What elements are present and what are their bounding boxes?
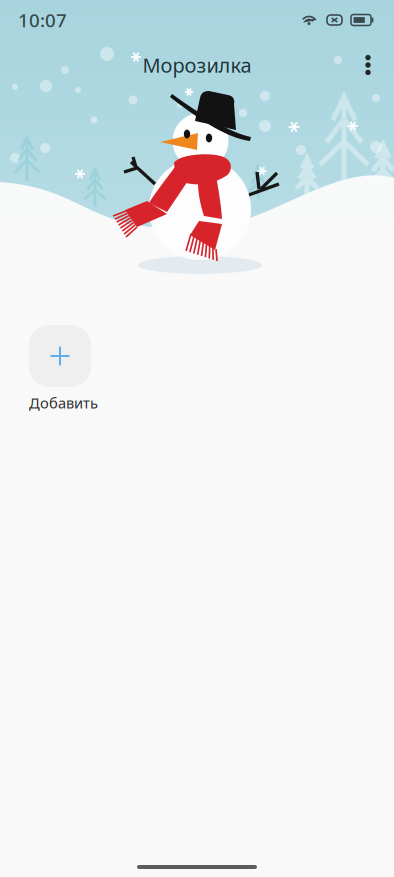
- button[interactable]: More options: [351, 40, 385, 90]
- staticText: 10:07: [18, 8, 67, 32]
- button[interactable]: Добавить: [29, 325, 98, 412]
- staticText: Морозилка: [142, 52, 251, 78]
- staticText: Добавить: [29, 393, 98, 412]
